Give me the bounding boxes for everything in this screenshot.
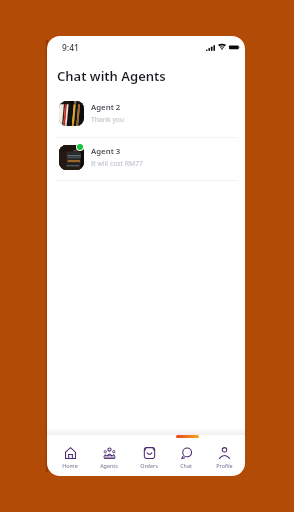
staticText: Agent 2	[91, 102, 121, 113]
button[interactable]: Agent 2	[47, 91, 245, 135]
staticText: Chat	[180, 462, 192, 469]
staticText: Chat with Agents	[57, 67, 166, 85]
button[interactable]: Profile	[205, 444, 243, 476]
button[interactable]: Home	[51, 444, 89, 476]
staticText: 9:41	[62, 42, 79, 54]
button[interactable]: Agents	[90, 444, 128, 476]
staticText: Profile	[216, 462, 233, 469]
staticText: Thank you	[91, 115, 125, 124]
button[interactable]: Agent 3	[47, 135, 245, 179]
staticText: Agent 3	[91, 146, 121, 157]
staticText: Orders	[140, 462, 158, 469]
staticText: It will cost RM77	[91, 159, 143, 168]
button[interactable]: Orders	[130, 444, 168, 476]
button[interactable]: Chat	[167, 444, 205, 476]
staticText: Agents	[100, 462, 118, 469]
staticText: Home	[62, 462, 78, 469]
